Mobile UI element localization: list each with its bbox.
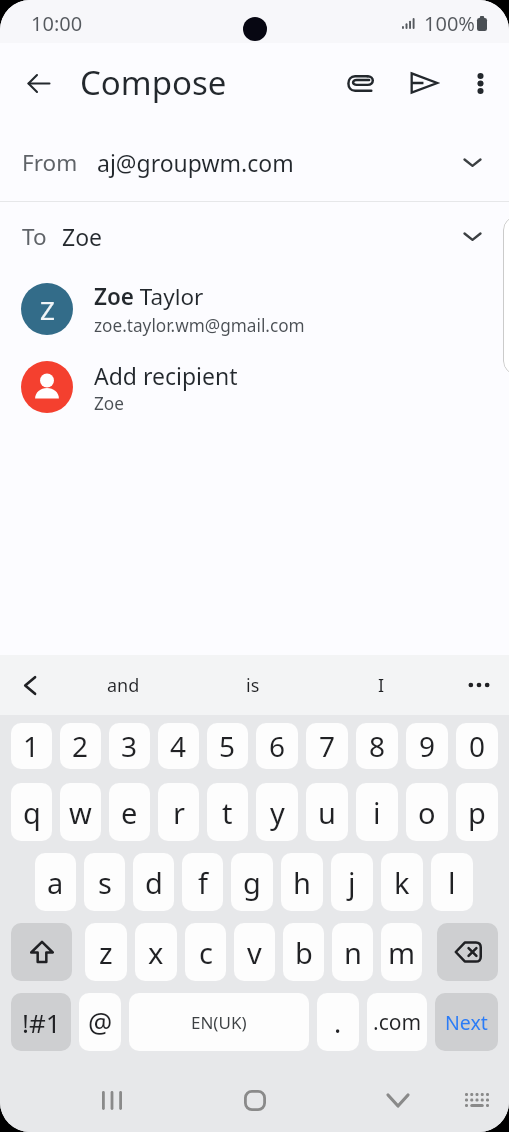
button[interactable]: 5 bbox=[207, 723, 248, 769]
button[interactable]: k bbox=[381, 853, 423, 911]
button[interactable]: f bbox=[182, 853, 223, 911]
button[interactable]: Previous suggestions bbox=[8, 663, 52, 707]
button[interactable]: 1 bbox=[11, 723, 52, 769]
staticText: To bbox=[22, 221, 47, 252]
button[interactable]: z bbox=[85, 923, 127, 981]
button[interactable]: .com bbox=[367, 993, 427, 1051]
button[interactable]: Recents bbox=[92, 1080, 132, 1120]
staticText: 100% bbox=[424, 10, 475, 37]
staticText: 0 bbox=[469, 727, 486, 765]
button[interactable]: n bbox=[332, 923, 373, 981]
staticText: d bbox=[145, 863, 163, 902]
button[interactable]: . bbox=[317, 993, 359, 1051]
button[interactable]: h bbox=[281, 853, 323, 911]
staticText: t bbox=[222, 793, 233, 832]
button[interactable]: To bbox=[0, 202, 509, 270]
button[interactable]: b bbox=[283, 923, 324, 981]
staticText: EN(UK) bbox=[191, 1011, 247, 1034]
button[interactable]: g bbox=[231, 853, 273, 911]
staticText: m bbox=[388, 933, 416, 972]
button[interactable]: Attach file bbox=[336, 59, 384, 107]
button[interactable]: Hide keyboard bbox=[378, 1080, 418, 1120]
button[interactable]: Backspace bbox=[437, 923, 498, 981]
button[interactable]: More suggestions bbox=[457, 663, 501, 707]
button[interactable]: 3 bbox=[109, 723, 150, 769]
staticText: j bbox=[348, 863, 356, 902]
button[interactable]: Home bbox=[235, 1080, 275, 1120]
button[interactable]: 2 bbox=[60, 723, 101, 769]
button[interactable]: Add recipient bbox=[0, 348, 509, 426]
button[interactable]: o bbox=[406, 783, 448, 841]
button[interactable]: 8 bbox=[356, 723, 398, 769]
button[interactable]: u bbox=[306, 783, 348, 841]
button[interactable]: More options bbox=[456, 59, 504, 107]
button[interactable]: Next bbox=[435, 993, 498, 1051]
staticText: zoe.taylor.wm@gmail.com bbox=[94, 314, 305, 337]
staticText: Zoe bbox=[94, 392, 124, 415]
staticText: a bbox=[47, 863, 64, 902]
staticText: 5 bbox=[219, 727, 236, 765]
button[interactable]: I bbox=[317, 655, 446, 715]
button[interactable]: !#1 bbox=[11, 993, 71, 1051]
staticText: y bbox=[270, 793, 285, 832]
button[interactable]: d bbox=[133, 853, 174, 911]
button[interactable]: From bbox=[0, 122, 509, 202]
button[interactable]: Z bbox=[0, 270, 509, 348]
button[interactable]: a bbox=[35, 853, 76, 911]
staticText: h bbox=[293, 863, 311, 902]
button[interactable]: l bbox=[431, 853, 473, 911]
button[interactable]: is bbox=[188, 655, 317, 715]
staticText: 2 bbox=[72, 727, 89, 765]
button[interactable]: 9 bbox=[406, 723, 448, 769]
staticText: b bbox=[295, 933, 313, 972]
button[interactable]: s bbox=[84, 853, 125, 911]
staticText: I bbox=[378, 673, 385, 698]
button[interactable]: and bbox=[58, 655, 188, 715]
button[interactable]: Change keyboard bbox=[457, 1080, 497, 1120]
staticText: Zoe Taylor bbox=[94, 281, 204, 312]
button[interactable]: Shift bbox=[11, 923, 72, 981]
staticText: r bbox=[173, 793, 185, 832]
button[interactable]: 0 bbox=[456, 723, 498, 769]
staticText: i bbox=[373, 793, 381, 832]
button[interactable]: i bbox=[356, 783, 398, 841]
button[interactable]: 7 bbox=[306, 723, 348, 769]
button[interactable]: e bbox=[109, 783, 150, 841]
button[interactable]: r bbox=[158, 783, 199, 841]
button[interactable]: x bbox=[135, 923, 177, 981]
staticText: k bbox=[394, 863, 410, 902]
button[interactable]: m bbox=[381, 923, 422, 981]
staticText: g bbox=[243, 863, 261, 902]
button[interactable]: y bbox=[256, 783, 298, 841]
staticText: Next bbox=[445, 1009, 488, 1036]
staticText: x bbox=[148, 933, 164, 972]
staticText: s bbox=[98, 863, 112, 902]
button[interactable]: c bbox=[185, 923, 226, 981]
staticText: v bbox=[247, 933, 262, 972]
staticText: 4 bbox=[170, 727, 187, 765]
button[interactable]: @ bbox=[79, 993, 121, 1051]
staticText: n bbox=[344, 933, 362, 972]
button[interactable]: q bbox=[11, 783, 52, 841]
button[interactable]: v bbox=[234, 923, 275, 981]
staticText: w bbox=[69, 793, 92, 832]
staticText: u bbox=[318, 793, 336, 832]
staticText: z bbox=[99, 933, 113, 972]
staticText: c bbox=[199, 933, 213, 972]
button[interactable]: 4 bbox=[158, 723, 199, 769]
button[interactable]: j bbox=[331, 853, 373, 911]
button[interactable]: Space bbox=[129, 993, 309, 1051]
button[interactable]: Back bbox=[14, 59, 62, 107]
button[interactable]: Send bbox=[400, 59, 448, 107]
staticText: aj@groupwm.com bbox=[97, 147, 294, 178]
staticText: From bbox=[22, 147, 78, 178]
staticText: and bbox=[107, 673, 140, 698]
staticText: l bbox=[448, 863, 456, 902]
button[interactable]: t bbox=[207, 783, 248, 841]
staticText: . bbox=[334, 1004, 342, 1041]
button[interactable]: 6 bbox=[256, 723, 298, 769]
staticText: !#1 bbox=[22, 1005, 61, 1040]
button[interactable]: p bbox=[456, 783, 498, 841]
staticText: @ bbox=[88, 1004, 113, 1041]
button[interactable]: w bbox=[60, 783, 101, 841]
